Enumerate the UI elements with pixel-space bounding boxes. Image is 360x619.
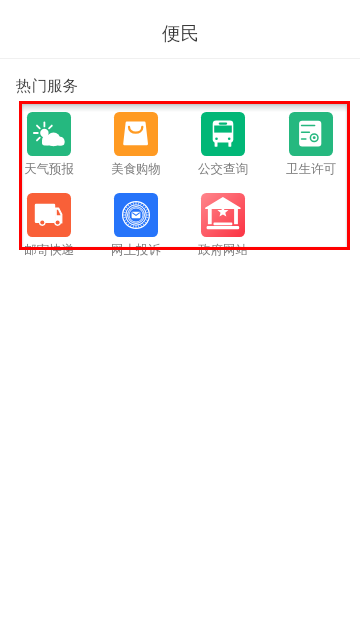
button[interactable]: 美食购物: [92, 101, 179, 182]
button[interactable]: 邮寄快递: [5, 182, 92, 263]
staticText: 卫生许可: [286, 161, 336, 177]
button[interactable]: 卫生许可: [267, 101, 355, 182]
button[interactable]: 网上投诉: [92, 182, 179, 263]
staticText: 政府网站: [198, 242, 248, 258]
staticText: 邮寄快递: [24, 242, 74, 258]
button[interactable]: 天气预报: [5, 101, 92, 182]
staticText: 网上投诉: [111, 242, 161, 258]
button[interactable]: 便民: [0, 0, 360, 58]
staticText: 天气预报: [24, 161, 74, 177]
button[interactable]: 政府网站: [179, 182, 267, 263]
staticText: 热门服务: [16, 76, 78, 96]
staticText: 公交查询: [198, 161, 248, 177]
button[interactable]: 公交查询: [179, 101, 267, 182]
staticText: 便民: [162, 22, 199, 45]
staticText: 美食购物: [111, 161, 161, 177]
